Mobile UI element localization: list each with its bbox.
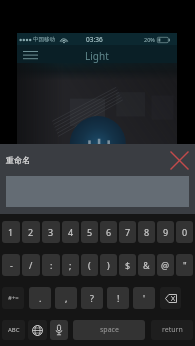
button[interactable]: return: [151, 320, 193, 340]
staticText: 7: [125, 226, 131, 238]
button[interactable]: 1: [2, 221, 20, 243]
staticText: ;: [69, 259, 72, 271]
button[interactable]: ?: [81, 287, 103, 309]
staticText: 中国移动: [33, 36, 55, 43]
staticText: !: [117, 292, 120, 304]
staticText: 0: [182, 226, 188, 238]
staticText: ?: [90, 292, 94, 304]
staticText: 3: [48, 226, 54, 238]
button[interactable]: &: [138, 254, 155, 276]
staticText: 9: [163, 226, 169, 238]
staticText: -: [10, 259, 13, 271]
button[interactable]: :: [42, 254, 60, 276]
staticText: 4: [68, 226, 74, 238]
button[interactable]: ,: [55, 287, 77, 309]
staticText: 20%: [144, 36, 155, 43]
staticText: ): [107, 259, 110, 271]
button[interactable]: Change keyboard language: [28, 320, 47, 340]
button[interactable]: $: [119, 254, 136, 276]
button[interactable]: ": [176, 254, 193, 276]
staticText: :: [50, 259, 53, 271]
staticText: #+=: [8, 294, 19, 302]
button[interactable]: ': [133, 287, 155, 309]
staticText: /: [29, 259, 33, 271]
button[interactable]: .: [29, 287, 51, 309]
button[interactable]: 0: [176, 221, 193, 243]
staticText: 6: [106, 226, 112, 238]
staticText: (: [88, 259, 91, 271]
button[interactable]: 6: [100, 221, 117, 243]
staticText: return: [162, 325, 183, 335]
button[interactable]: /: [22, 254, 40, 276]
staticText: 5: [87, 226, 93, 238]
staticText: @: [161, 259, 170, 271]
button[interactable]: #+=: [2, 287, 24, 309]
staticText: 1: [8, 226, 14, 238]
button[interactable]: @: [157, 254, 174, 276]
button[interactable]: ;: [62, 254, 79, 276]
staticText: Light: [85, 49, 109, 63]
staticText: &: [143, 259, 150, 271]
button[interactable]: (: [81, 254, 98, 276]
staticText: .: [39, 292, 42, 304]
button[interactable]: 2: [22, 221, 40, 243]
button[interactable]: Menu: [19, 46, 41, 64]
button[interactable]: ): [100, 254, 117, 276]
staticText: ,: [65, 292, 68, 304]
staticText: 8: [144, 226, 150, 238]
button[interactable]: 4: [62, 221, 79, 243]
button[interactable]: Voice input: [50, 320, 68, 340]
button[interactable]: 7: [119, 221, 136, 243]
staticText: $: [125, 259, 131, 271]
button[interactable]: Close: [168, 149, 190, 171]
staticText: 2: [28, 226, 34, 238]
staticText: ': [143, 292, 146, 304]
button[interactable]: 8: [138, 221, 155, 243]
button[interactable]: 3: [42, 221, 60, 243]
button[interactable]: space: [73, 320, 145, 340]
button[interactable]: 9: [157, 221, 174, 243]
button[interactable]: Backspace: [160, 287, 181, 309]
staticText: 03:36: [86, 35, 103, 44]
button[interactable]: -: [2, 254, 20, 276]
button[interactable]: ABC: [2, 320, 25, 340]
button[interactable]: 5: [81, 221, 98, 243]
staticText: 重命名: [6, 155, 30, 165]
staticText: space: [100, 325, 119, 335]
staticText: ABC: [8, 326, 20, 334]
button[interactable]: !: [107, 287, 129, 309]
staticText: ": [183, 259, 187, 271]
